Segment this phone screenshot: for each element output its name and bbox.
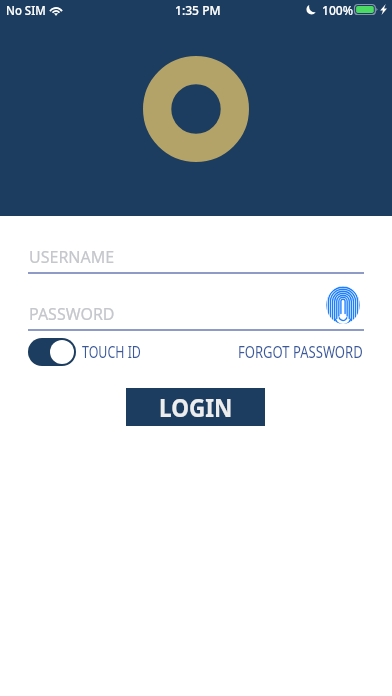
- button[interactable]: LOGIN: [126, 388, 265, 426]
- button[interactable]: Sign in with fingerprint: [326, 286, 360, 324]
- staticText: USERNAME: [29, 246, 115, 268]
- button[interactable]: USERNAME: [28, 236, 364, 274]
- button[interactable]: TOUCH ID: [28, 337, 159, 366]
- staticText: TOUCH ID: [82, 341, 142, 363]
- staticText: FORGOT PASSWORD: [238, 341, 363, 362]
- button[interactable]: PASSWORD: [28, 293, 364, 331]
- staticText: LOGIN: [159, 390, 233, 424]
- staticText: 100%: [322, 1, 354, 19]
- staticText: 1:35 PM: [175, 1, 221, 19]
- staticText: No SIM: [6, 1, 46, 19]
- button[interactable]: FORGOT PASSWORD: [238, 341, 391, 362]
- staticText: PASSWORD: [29, 303, 115, 325]
